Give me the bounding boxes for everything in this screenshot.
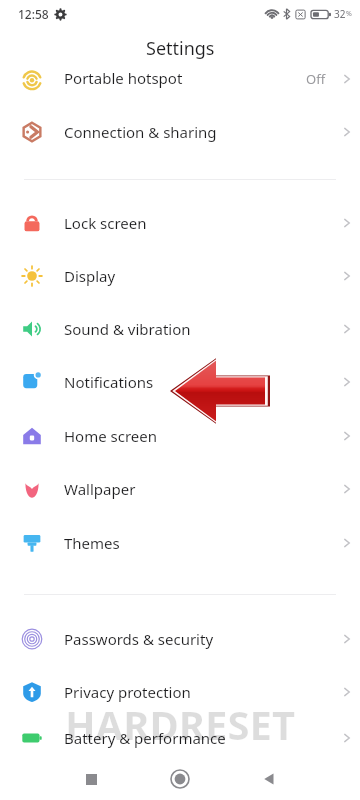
staticText: 32	[334, 7, 346, 21]
staticText: 12:58	[18, 6, 49, 22]
button[interactable]: Lock screen	[0, 201, 360, 245]
staticText: %	[346, 9, 352, 19]
button[interactable]: Themes	[0, 521, 360, 565]
staticText: Passwords & security	[64, 629, 214, 649]
staticText: Off	[306, 70, 326, 88]
button[interactable]: Back	[252, 762, 286, 796]
button[interactable]: Passwords & security	[0, 617, 360, 661]
staticText: Home screen	[64, 426, 158, 446]
staticText: Privacy protection	[64, 682, 191, 702]
button[interactable]: Sound & vibration	[0, 307, 360, 351]
staticText: Connection & sharing	[64, 122, 217, 142]
staticText: Sound & vibration	[64, 319, 191, 339]
button[interactable]: Notifications	[0, 360, 360, 404]
staticText: Wallpaper	[64, 479, 136, 499]
staticText: Themes	[64, 533, 120, 553]
staticText: HARDRESET	[65, 697, 295, 751]
button[interactable]: Connection & sharing	[0, 110, 360, 154]
staticText: Lock screen	[64, 213, 147, 233]
button[interactable]: Battery & performance	[0, 724, 360, 752]
button[interactable]: Portable hotspot	[0, 56, 360, 82]
staticText: Display	[64, 266, 116, 286]
button[interactable]: Wallpaper	[0, 467, 360, 511]
staticText: Notifications	[64, 372, 154, 392]
staticText: Battery & performance	[64, 728, 226, 748]
staticText: Portable hotspot	[64, 68, 183, 88]
button[interactable]: Recent apps	[74, 762, 108, 796]
staticText: Settings	[146, 36, 215, 61]
button[interactable]: Display	[0, 254, 360, 298]
button[interactable]: Privacy protection	[0, 670, 360, 714]
button[interactable]: Home	[162, 761, 198, 797]
button[interactable]: Home screen	[0, 414, 360, 458]
